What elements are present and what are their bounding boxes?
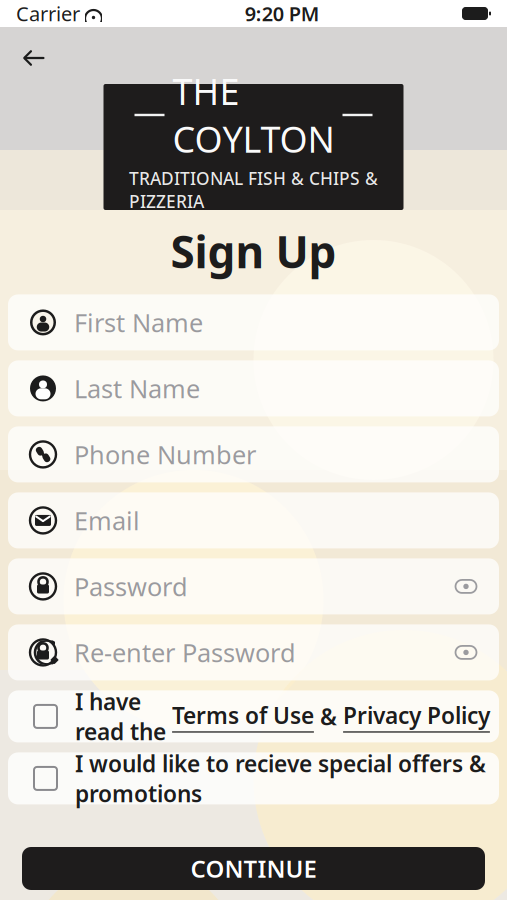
- button[interactable]: Phone Number: [8, 426, 499, 482]
- staticText: First Name: [74, 306, 203, 339]
- button[interactable]: I would like to recieve special offers &…: [8, 752, 499, 804]
- staticText: Privacy Policy: [343, 700, 490, 730]
- button[interactable]: Password: [8, 558, 499, 614]
- button[interactable]: First Name: [8, 294, 499, 350]
- staticText: Password: [74, 570, 188, 603]
- staticText: Re-enter Password: [74, 636, 296, 669]
- button[interactable]: Back: [10, 36, 58, 80]
- staticText: Last Name: [74, 372, 200, 405]
- staticText: I would like to recieve special offers &…: [75, 748, 486, 808]
- staticText: TRADITIONAL FISH & CHIPS & PIZZERIA: [129, 167, 378, 213]
- button[interactable]: Re-enter Password: [8, 624, 499, 680]
- staticText: I have read the: [75, 686, 172, 746]
- staticText: THE COYLTON: [172, 67, 334, 163]
- staticText: Carrier: [16, 0, 80, 27]
- staticText: Terms of Use: [172, 700, 314, 730]
- staticText: 9:20 PM: [245, 0, 320, 27]
- staticText: Phone Number: [74, 438, 256, 471]
- staticText: Email: [74, 504, 140, 537]
- button[interactable]: CONTINUE: [22, 847, 485, 890]
- button[interactable]: Last Name: [8, 360, 499, 416]
- staticText: CONTINUE: [190, 853, 316, 884]
- button[interactable]: Email: [8, 492, 499, 548]
- staticText: &: [314, 701, 343, 731]
- button[interactable]: I have read the: [8, 690, 499, 742]
- staticText: Sign Up: [170, 222, 336, 280]
